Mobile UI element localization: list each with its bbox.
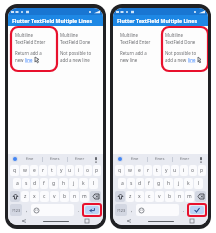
button[interactable]: y — [57, 165, 65, 176]
button[interactable]: Multiline — [58, 30, 98, 70]
staticText: y — [60, 167, 63, 174]
button[interactable]: i — [75, 165, 83, 176]
button[interactable]: l — [89, 178, 98, 189]
button[interactable]: m — [185, 191, 194, 202]
button[interactable]: r — [144, 165, 152, 176]
staticText: TextField Done — [165, 39, 196, 45]
button[interactable]: r — [39, 165, 47, 176]
button[interactable]: a — [118, 178, 126, 189]
staticText: finer — [180, 156, 190, 162]
button[interactable]: Voice settings — [117, 156, 123, 162]
button[interactable]: Enter new line — [85, 206, 99, 214]
button[interactable]: fine — [123, 154, 147, 164]
button[interactable]: Shift — [10, 191, 20, 202]
button[interactable]: q — [115, 165, 124, 176]
button[interactable]: Multiline — [163, 30, 203, 70]
button[interactable]: j — [174, 178, 183, 189]
button[interactable]: Home — [43, 221, 69, 222]
staticText: new — [15, 57, 25, 63]
button[interactable]: z — [21, 191, 29, 202]
button[interactable]: e — [30, 165, 38, 176]
button[interactable]: Back — [127, 219, 131, 223]
button[interactable]: Voice input — [197, 156, 204, 163]
button[interactable]: ?123 — [115, 204, 127, 216]
button[interactable]: a — [13, 178, 21, 189]
button[interactable]: Space — [31, 204, 74, 216]
button[interactable]: Shift — [115, 191, 125, 202]
button[interactable]: u — [171, 165, 179, 176]
button[interactable]: z — [126, 191, 134, 202]
button[interactable]: Multiline — [13, 30, 52, 70]
staticText: a — [16, 180, 19, 187]
button[interactable]: k — [184, 178, 193, 189]
staticText: z — [24, 193, 27, 200]
button[interactable]: ?123 — [10, 204, 22, 216]
button[interactable]: l — [194, 178, 203, 189]
button[interactable]: w — [125, 165, 134, 176]
button[interactable]: b — [60, 191, 69, 202]
button[interactable]: Back — [22, 219, 26, 223]
button[interactable]: fines — [148, 154, 172, 164]
button[interactable]: . — [75, 204, 82, 216]
button[interactable]: h — [59, 178, 68, 189]
button[interactable]: u — [66, 165, 74, 176]
button[interactable]: m — [80, 191, 89, 202]
button[interactable]: o — [84, 165, 92, 176]
button[interactable]: fines — [43, 154, 67, 164]
button[interactable]: Backspace — [195, 191, 206, 202]
staticText: r — [42, 167, 45, 174]
staticText: t — [156, 167, 158, 174]
staticText: finer — [75, 156, 85, 162]
button[interactable]: x — [30, 191, 39, 202]
button[interactable]: g — [154, 178, 163, 189]
button[interactable]: k — [79, 178, 88, 189]
staticText: ?123 — [12, 208, 21, 213]
button[interactable]: i — [180, 165, 188, 176]
button[interactable]: c — [145, 191, 154, 202]
button[interactable]: Space — [136, 204, 179, 216]
button[interactable]: q — [10, 165, 19, 176]
button[interactable]: finer — [173, 154, 197, 164]
button[interactable]: d — [136, 178, 144, 189]
button[interactable]: h — [164, 178, 173, 189]
button[interactable]: o — [189, 165, 197, 176]
button[interactable]: b — [165, 191, 174, 202]
button[interactable]: , — [23, 204, 30, 216]
button[interactable]: n — [175, 191, 184, 202]
button[interactable]: Voice input — [92, 156, 99, 163]
button[interactable]: y — [162, 165, 170, 176]
button[interactable]: fine — [18, 154, 42, 164]
button[interactable]: s — [22, 178, 30, 189]
button[interactable]: Backspace — [90, 191, 101, 202]
button[interactable]: Recents — [190, 219, 194, 223]
button[interactable]: f — [145, 178, 153, 189]
button[interactable]: t — [48, 165, 56, 176]
staticText: h — [62, 180, 66, 187]
button[interactable]: finer — [68, 154, 92, 164]
button[interactable]: n — [70, 191, 79, 202]
button[interactable]: Home — [148, 221, 174, 222]
button[interactable]: s — [127, 178, 135, 189]
staticText: . — [78, 207, 80, 214]
button[interactable]: v — [50, 191, 59, 202]
button[interactable]: , — [128, 204, 135, 216]
button[interactable]: v — [155, 191, 164, 202]
button[interactable]: f — [40, 178, 48, 189]
button[interactable]: g — [49, 178, 58, 189]
button[interactable]: e — [135, 165, 143, 176]
button[interactable]: . — [180, 204, 187, 216]
button[interactable]: d — [31, 178, 39, 189]
button[interactable]: c — [40, 191, 49, 202]
button[interactable]: x — [135, 191, 144, 202]
button[interactable]: j — [69, 178, 78, 189]
button[interactable]: Multiline — [118, 30, 157, 70]
staticText: o — [86, 167, 90, 174]
button[interactable]: w — [20, 165, 29, 176]
button[interactable]: Recents — [85, 219, 89, 223]
staticText: r — [147, 167, 150, 174]
button[interactable]: p — [198, 165, 206, 176]
button[interactable]: p — [93, 165, 101, 176]
button[interactable]: t — [153, 165, 161, 176]
button[interactable]: Done — [190, 206, 204, 214]
button[interactable]: Voice settings — [12, 156, 18, 162]
